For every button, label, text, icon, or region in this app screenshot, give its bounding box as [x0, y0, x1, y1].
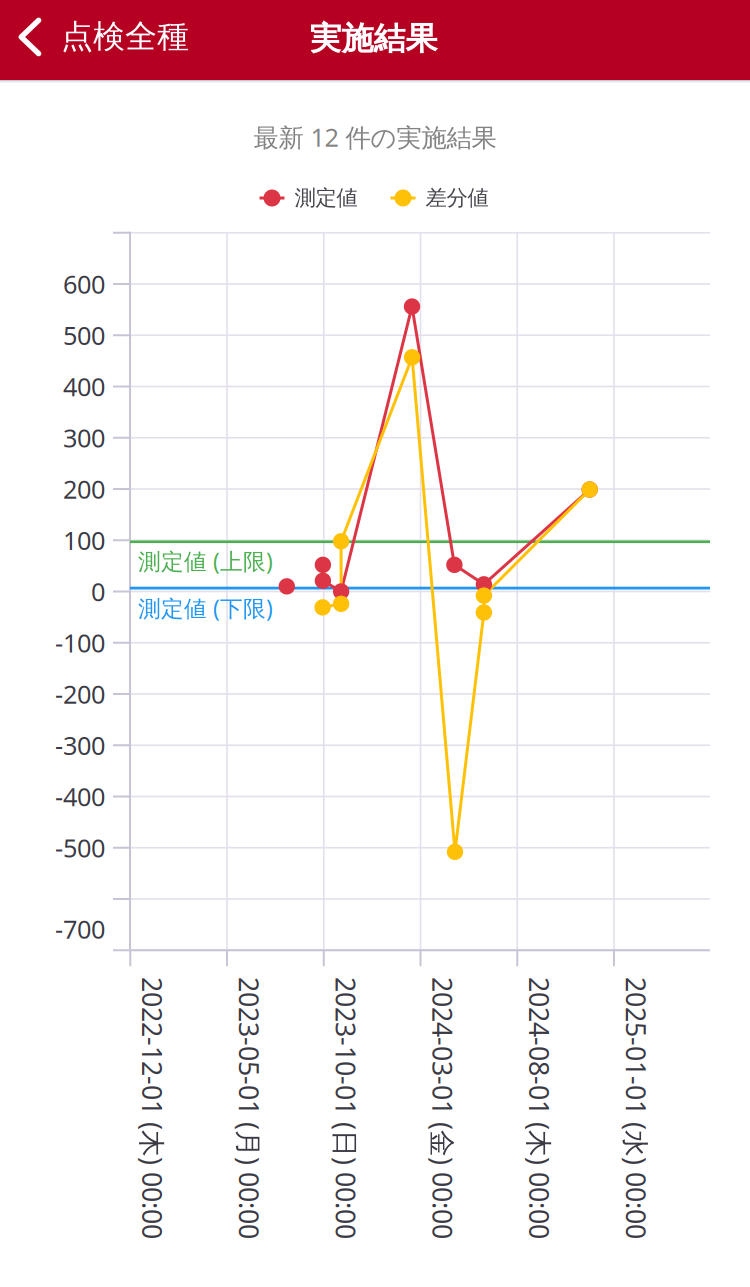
staticText: -100 — [55, 626, 105, 659]
staticText: 2023-10-01 (日) 00:00 — [215, 1090, 477, 1126]
staticText: -700 — [55, 912, 105, 946]
staticText: 2023-05-01 (月) 00:00 — [118, 1090, 380, 1126]
staticText: -300 — [55, 728, 105, 762]
staticText: -500 — [55, 831, 105, 864]
staticText: 500 — [63, 318, 105, 352]
staticText: 実施結果 — [309, 19, 437, 58]
staticText: 0 — [91, 575, 105, 608]
staticText: 測定値 (下限) — [138, 593, 273, 623]
staticText: 400 — [63, 370, 105, 403]
staticText: -400 — [55, 780, 105, 813]
staticText: 200 — [63, 472, 105, 506]
staticText: 2025-01-01 (水) 00:00 — [505, 1090, 750, 1126]
staticText: 最新 12 件の実施結果 — [253, 120, 496, 154]
staticText: 測定値 — [294, 185, 357, 211]
staticText: 2022-12-01 (木) 00:00 — [21, 1090, 283, 1126]
staticText: 2024-03-01 (金) 00:00 — [311, 1090, 573, 1126]
staticText: 100 — [63, 523, 105, 557]
staticText: 2024-08-01 (木) 00:00 — [408, 1090, 670, 1126]
button[interactable]: 戻る 点検全種 — [0, 0, 200, 80]
staticText: 差分値 — [425, 185, 488, 211]
staticText: 300 — [63, 421, 105, 454]
staticText: 600 — [63, 267, 105, 301]
staticText: 点検全種 — [61, 17, 189, 56]
staticText: 測定値 (上限) — [138, 546, 273, 576]
staticText: -200 — [55, 677, 105, 711]
